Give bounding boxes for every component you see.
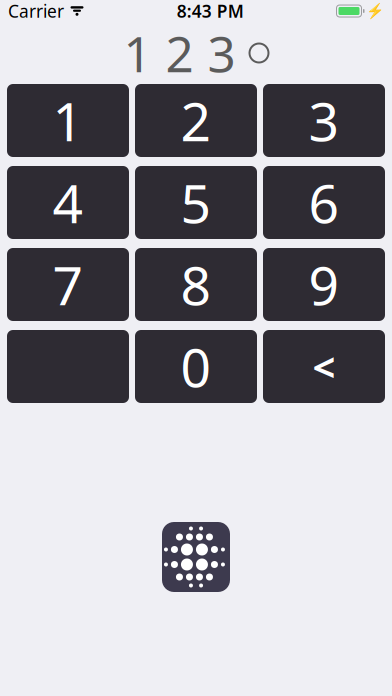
button[interactable]: Blank bbox=[7, 330, 129, 403]
button[interactable]: 1 bbox=[7, 84, 129, 157]
staticText: 1 bbox=[52, 84, 83, 157]
button[interactable]: 0 bbox=[135, 330, 257, 403]
button[interactable]: App logo bbox=[162, 522, 230, 592]
button[interactable]: 4 bbox=[7, 166, 129, 239]
staticText: Carrier bbox=[8, 0, 64, 22]
button[interactable]: Delete bbox=[263, 330, 385, 403]
staticText: 8 bbox=[180, 248, 211, 321]
staticText: 2 bbox=[180, 84, 211, 157]
button[interactable]: 5 bbox=[135, 166, 257, 239]
button[interactable]: 7 bbox=[7, 248, 129, 321]
button[interactable]: 6 bbox=[263, 166, 385, 239]
staticText: < bbox=[312, 340, 335, 393]
staticText: 8:43 PM bbox=[177, 0, 244, 22]
staticText: 0 bbox=[180, 330, 211, 403]
button[interactable]: 9 bbox=[263, 248, 385, 321]
staticText: 4 bbox=[52, 166, 83, 239]
staticText: 5 bbox=[180, 166, 211, 239]
staticText: ⚡ bbox=[366, 3, 384, 19]
staticText: 3 bbox=[207, 19, 235, 87]
button[interactable]: 3 bbox=[263, 84, 385, 157]
button[interactable]: 8 bbox=[135, 248, 257, 321]
staticText: 1 bbox=[123, 19, 151, 87]
staticText: 2 bbox=[165, 19, 193, 87]
button[interactable]: 2 bbox=[135, 84, 257, 157]
staticText: 6 bbox=[308, 166, 339, 239]
staticText: 7 bbox=[52, 248, 83, 321]
staticText: 9 bbox=[308, 248, 339, 321]
staticText: 3 bbox=[308, 84, 339, 157]
